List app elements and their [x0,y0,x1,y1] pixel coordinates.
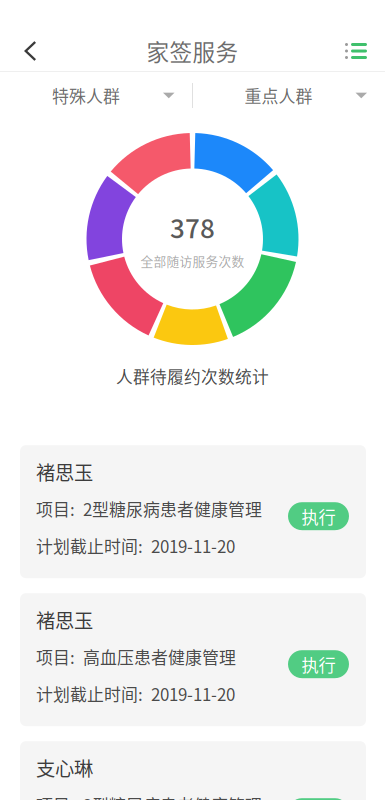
staticText: 家签服务 [146,35,238,67]
button[interactable]: 支心琳 [20,741,366,800]
staticText: 执行 [301,652,335,677]
staticText: 人群待履约次数统计 [116,364,269,388]
staticText: 378 [170,208,215,246]
button[interactable]: 重点人群 [192,72,385,119]
button[interactable]: 返回 [0,29,53,73]
staticText: 特殊人群 [52,83,120,108]
staticText: 计划截止时间: 2019-11-20 [36,681,235,706]
staticText: 重点人群 [244,83,312,108]
staticText: 全部随访服务次数 [140,252,244,270]
staticText: 计划截止时间: 2019-11-20 [36,533,235,558]
staticText: 项目: 2型糖尿病患者健康管理 [36,792,262,800]
button[interactable]: 褚思玉 [20,445,366,578]
staticText: 褚思玉 [36,458,93,486]
staticText: 项目: 高血压患者健康管理 [36,644,236,669]
staticText: 项目: 2型糖尿病患者健康管理 [36,496,262,521]
staticText: 执行 [301,504,335,529]
button[interactable]: 特殊人群 [0,72,192,119]
staticText: 褚思玉 [36,606,93,634]
staticText: 支心琳 [36,754,93,782]
button[interactable]: 褚思玉 [20,593,366,726]
button[interactable]: 列表 [327,30,385,71]
